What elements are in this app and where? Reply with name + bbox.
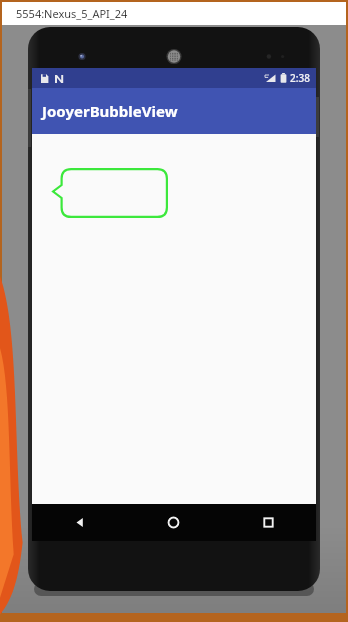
button[interactable] <box>52 168 168 218</box>
button[interactable]: Back <box>32 504 126 541</box>
staticText: JooyerBubbleView <box>42 101 178 121</box>
staticText: 5554:Nexus_5_API_24 <box>16 6 128 21</box>
staticText: 2:38 <box>290 71 310 85</box>
button[interactable]: Recent apps <box>221 504 316 541</box>
button[interactable]: Home <box>126 504 221 541</box>
